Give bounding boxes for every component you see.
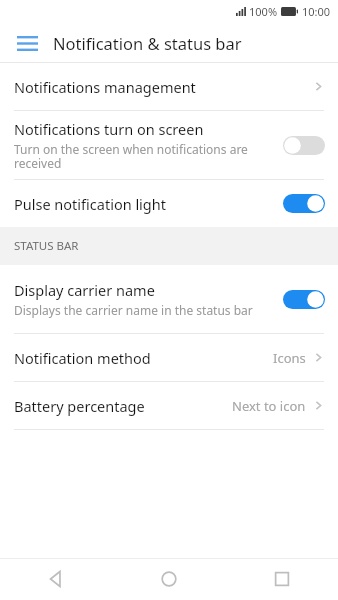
staticText: Notification & status bar: [53, 32, 242, 54]
button[interactable]: Battery percentage: [0, 382, 338, 429]
button[interactable]: On: [283, 290, 325, 309]
button[interactable]: Notifications management: [0, 63, 338, 110]
staticText: Notification method: [14, 348, 151, 368]
staticText: Battery percentage: [14, 396, 145, 416]
button[interactable]: Recents: [225, 558, 338, 600]
button[interactable]: Pulse notification light: [0, 180, 338, 227]
staticText: STATUS BAR: [14, 238, 79, 254]
staticText: Pulse notification light: [14, 194, 166, 214]
staticText: Display carrier name: [14, 280, 155, 300]
button[interactable]: On: [283, 194, 325, 213]
button[interactable]: Notifications turn on screen: [0, 111, 338, 179]
button[interactable]: Notification method: [0, 334, 338, 381]
button[interactable]: Home: [112, 558, 225, 600]
button[interactable]: Back: [0, 558, 112, 600]
staticText: Icons: [273, 349, 306, 367]
button[interactable]: Menu: [7, 23, 47, 63]
staticText: Notifications management: [14, 77, 196, 97]
staticText: 100%: [249, 4, 278, 19]
staticText: 10:00: [302, 4, 331, 19]
button[interactable]: Off: [283, 136, 325, 155]
staticText: Notifications turn on screen: [14, 119, 204, 139]
button[interactable]: Display carrier name: [0, 265, 338, 333]
staticText: Turn on the screen when notifications ar…: [14, 141, 248, 172]
staticText: Displays the carrier name in the status …: [14, 302, 253, 318]
staticText: Next to icon: [232, 397, 306, 415]
